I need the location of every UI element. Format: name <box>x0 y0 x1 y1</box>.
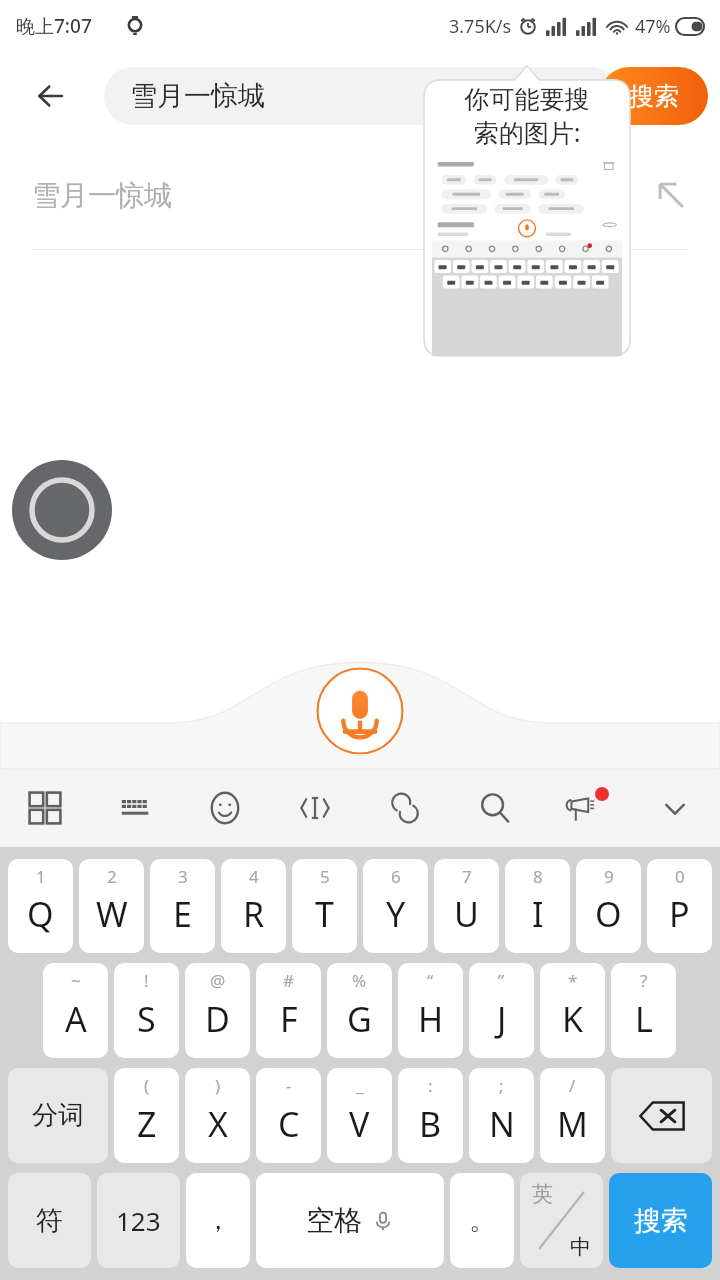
button[interactable]: ” <box>469 963 534 1058</box>
button[interactable]: 搜索 <box>609 1173 712 1268</box>
staticText: ) <box>215 1074 221 1097</box>
staticText: % <box>352 969 367 992</box>
staticText: M <box>557 1101 588 1147</box>
button[interactable]: “ <box>398 963 463 1058</box>
button[interactable]: Backspace <box>611 1068 712 1163</box>
staticText: 搜索 <box>634 1204 688 1238</box>
button[interactable]: 搜索 <box>600 67 708 125</box>
button[interactable]: ! <box>114 963 179 1058</box>
staticText: ! <box>144 969 149 992</box>
button[interactable]: 。 <box>450 1173 514 1268</box>
button[interactable]: 符 <box>8 1173 91 1268</box>
staticText: : <box>428 1074 433 1097</box>
staticText: D <box>205 996 230 1042</box>
button[interactable]: ) <box>185 1068 250 1163</box>
staticText: _ <box>356 1074 364 1097</box>
staticText: 2 <box>107 865 117 888</box>
button[interactable]: Search <box>450 769 540 847</box>
button[interactable]: 6 <box>363 859 428 953</box>
button[interactable]: Clipboard <box>360 769 450 847</box>
button[interactable]: 空格 <box>256 1173 444 1268</box>
button[interactable]: Collapse <box>630 769 720 847</box>
staticText: L <box>635 996 653 1042</box>
button[interactable]: - <box>256 1068 321 1163</box>
staticText: Q <box>27 891 54 937</box>
button[interactable]: Voice input <box>316 667 404 755</box>
staticText: H <box>418 996 444 1042</box>
button[interactable]: ? <box>611 963 676 1058</box>
staticText: ， <box>205 1204 231 1237</box>
staticText: 搜索 <box>629 81 679 112</box>
staticText: 6 <box>391 865 401 888</box>
staticText: 3.75K/s <box>449 14 512 39</box>
staticText: B <box>419 1101 442 1147</box>
staticText: C <box>278 1101 300 1147</box>
button[interactable]: 8 <box>505 859 570 953</box>
staticText: 47% <box>635 14 671 39</box>
staticText: 雪月一惊城 <box>130 79 265 113</box>
staticText: G <box>347 996 372 1042</box>
staticText: 123 <box>116 1203 161 1238</box>
button[interactable]: _ <box>327 1068 392 1163</box>
staticText: 7 <box>462 865 472 888</box>
button[interactable]: ~ <box>43 963 108 1058</box>
staticText: @ <box>210 969 226 992</box>
staticText: W <box>96 891 128 937</box>
staticText: ? <box>640 969 648 992</box>
staticText: 8 <box>533 865 543 888</box>
staticText: Y <box>386 891 406 937</box>
staticText: 分词 <box>32 1099 84 1132</box>
staticText: P <box>669 891 690 937</box>
button[interactable]: Language toggle <box>520 1173 603 1268</box>
staticText: # <box>283 969 294 992</box>
button[interactable]: Apps <box>0 769 90 847</box>
staticText: S <box>137 996 156 1042</box>
button[interactable]: # <box>256 963 321 1058</box>
button[interactable]: Edit text <box>270 769 360 847</box>
staticText: “ <box>427 969 434 992</box>
staticText: 4 <box>249 865 259 888</box>
staticText: ( <box>144 1074 150 1097</box>
button[interactable]: * <box>540 963 605 1058</box>
staticText: - <box>286 1074 292 1097</box>
staticText: K <box>562 996 584 1042</box>
button[interactable]: ， <box>186 1173 250 1268</box>
button[interactable]: @ <box>185 963 250 1058</box>
button[interactable]: 2 <box>79 859 144 953</box>
staticText: * <box>568 969 578 992</box>
staticText: 中 <box>570 1234 591 1260</box>
staticText: 空格 <box>306 1203 362 1238</box>
button[interactable]: Assistant <box>12 460 112 560</box>
staticText: 符 <box>36 1204 63 1238</box>
button[interactable]: Back <box>22 67 80 125</box>
button[interactable]: ; <box>469 1068 534 1163</box>
staticText: 晚上7:07 <box>16 13 92 39</box>
button[interactable]: Keyboard <box>90 769 180 847</box>
button[interactable]: 7 <box>434 859 499 953</box>
button[interactable]: 雪月一惊城 <box>104 67 620 125</box>
staticText: R <box>243 891 265 937</box>
button[interactable]: 1 <box>8 859 73 953</box>
staticText: 9 <box>604 865 614 888</box>
staticText: 英 <box>532 1181 553 1207</box>
button[interactable]: 123 <box>97 1173 180 1268</box>
button[interactable]: Emoji <box>180 769 270 847</box>
button[interactable]: / <box>540 1068 605 1163</box>
button[interactable]: 4 <box>221 859 286 953</box>
button[interactable]: 9 <box>576 859 641 953</box>
staticText: 3 <box>178 865 188 888</box>
button[interactable]: : <box>398 1068 463 1163</box>
button[interactable]: 分词 <box>8 1068 108 1163</box>
staticText: / <box>569 1074 576 1097</box>
button[interactable]: % <box>327 963 392 1058</box>
button[interactable]: 5 <box>292 859 357 953</box>
button[interactable]: 0 <box>647 859 712 953</box>
staticText: T <box>315 891 334 937</box>
staticText: 5 <box>320 865 330 888</box>
staticText: 雪月一惊城 <box>32 178 654 213</box>
button[interactable]: 3 <box>150 859 215 953</box>
button[interactable]: ( <box>114 1068 179 1163</box>
staticText: 你可能要搜 索的图片: <box>434 84 620 149</box>
button[interactable]: Theme <box>540 769 630 847</box>
button[interactable]: 雪月一惊城 <box>0 140 720 250</box>
